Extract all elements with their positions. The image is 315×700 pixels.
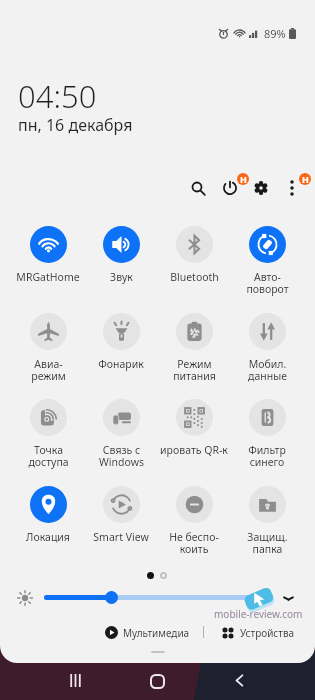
button[interactable]: Power	[217, 175, 243, 201]
button[interactable]: Защищ. папка	[229, 486, 305, 556]
staticText: Точка доступа	[28, 443, 69, 469]
staticText: пн, 16 декабря	[18, 114, 133, 136]
staticText: Устройства	[240, 626, 295, 640]
staticText: 89%	[264, 26, 286, 41]
staticText: mobile-review.com	[214, 607, 303, 621]
staticText: ировать QR-к	[160, 443, 228, 457]
staticText: MRGatHome	[16, 270, 80, 284]
staticText: Локация	[26, 530, 70, 544]
button[interactable]: MRGatHome	[10, 226, 86, 284]
button[interactable]: Bluetooth	[156, 226, 232, 284]
staticText: Связь с Windows	[99, 443, 144, 469]
button[interactable]: Back	[235, 674, 244, 687]
button[interactable]: Recents	[69, 674, 82, 687]
button[interactable]: More options	[279, 175, 305, 201]
button[interactable]: Home	[150, 674, 165, 689]
button[interactable]: Фильтр синего	[229, 399, 305, 469]
button[interactable]: Мультимедиа	[105, 624, 190, 641]
staticText: Звук	[110, 270, 133, 284]
button[interactable]: Expand	[279, 589, 297, 607]
staticText: Мультимедиа	[123, 626, 190, 640]
button[interactable]: Search	[185, 175, 211, 201]
button[interactable]: Settings	[248, 175, 274, 201]
staticText: Авиа- режим	[31, 357, 66, 383]
staticText: Не беспо- коить	[169, 530, 219, 556]
button[interactable]: Связь с Windows	[83, 399, 159, 469]
button[interactable]: Фонарик	[83, 313, 159, 371]
button[interactable]: Устройства	[222, 624, 295, 641]
button[interactable]: Режим питания	[156, 313, 232, 383]
button[interactable]: Мобил. данные	[229, 313, 305, 383]
staticText: H	[240, 173, 247, 185]
staticText: Фильтр синего	[248, 443, 286, 469]
button[interactable]: Локация	[10, 486, 86, 544]
button[interactable]: Smart View	[83, 486, 159, 544]
button[interactable]: ировать QR-к	[156, 399, 232, 457]
staticText: Защищ. папка	[247, 530, 288, 556]
staticText: Режим питания	[173, 357, 216, 383]
button[interactable]: Звук	[83, 226, 159, 284]
staticText: Мобил. данные	[248, 357, 287, 383]
button[interactable]: Точка доступа	[10, 399, 86, 469]
staticText: Smart View	[93, 530, 149, 544]
staticText: Фонарик	[98, 357, 144, 371]
staticText: Авто- поворот	[246, 270, 289, 296]
button[interactable]: Авто- поворот	[229, 226, 305, 296]
staticText: 04:50	[18, 75, 97, 117]
button[interactable]: Не беспо- коить	[156, 486, 232, 556]
staticText: H	[302, 173, 309, 185]
button[interactable]: Авиа- режим	[10, 313, 86, 383]
staticText: Bluetooth	[170, 270, 219, 284]
